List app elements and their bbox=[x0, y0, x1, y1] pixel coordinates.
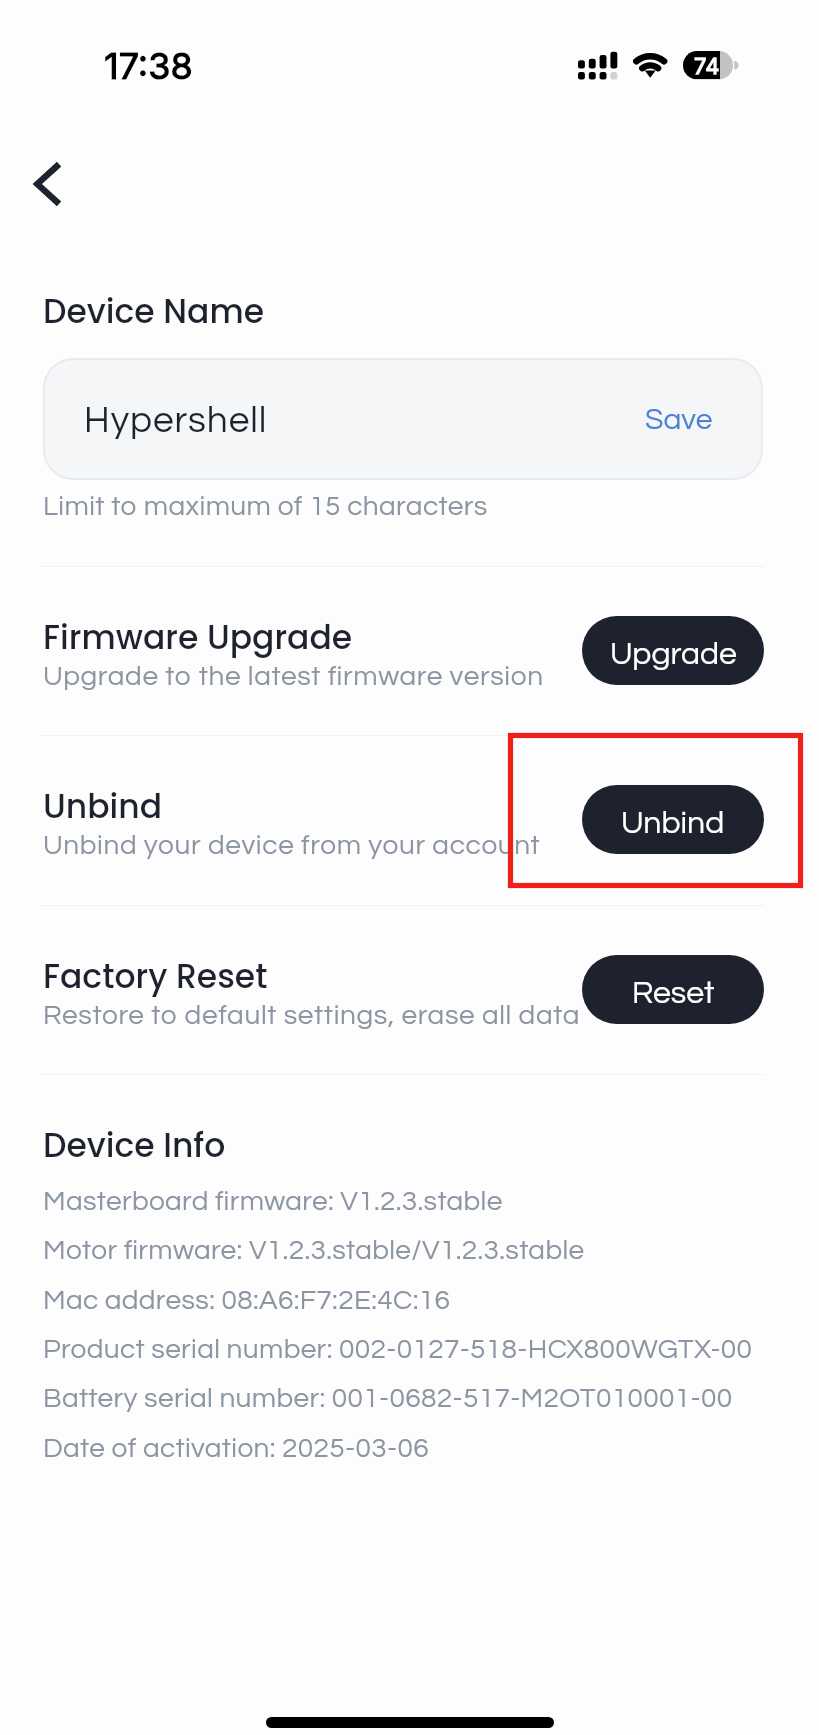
button[interactable]: Hypershell bbox=[43, 358, 763, 480]
staticText: Unbind bbox=[43, 783, 163, 829]
staticText: Product serial number: 002-0127-518-HCX8… bbox=[43, 1335, 753, 1364]
button[interactable]: Save bbox=[635, 394, 723, 445]
staticText: Battery serial number: 001-0682-517-M2OT… bbox=[43, 1384, 733, 1413]
staticText: Upgrade bbox=[610, 638, 737, 671]
staticText: Device Name bbox=[43, 288, 265, 334]
button[interactable]: Unbind bbox=[582, 785, 764, 854]
staticText: 74 bbox=[694, 53, 720, 80]
staticText: Save bbox=[645, 404, 713, 435]
staticText: Date of activation: 2025-03-06 bbox=[43, 1434, 429, 1463]
staticText: Motor firmware: V1.2.3.stable/V1.2.3.sta… bbox=[43, 1236, 585, 1265]
staticText: Reset bbox=[632, 977, 715, 1010]
button[interactable]: Back bbox=[18, 155, 76, 213]
staticText: Masterboard firmware: V1.2.3.stable bbox=[43, 1187, 503, 1216]
staticText: Upgrade to the latest firmware version bbox=[43, 662, 544, 691]
button[interactable]: Reset bbox=[582, 955, 764, 1024]
staticText: Mac address: 08:A6:F7:2E:4C:16 bbox=[43, 1286, 451, 1315]
staticText: Limit to maximum of 15 characters bbox=[43, 492, 488, 521]
button[interactable]: Upgrade bbox=[582, 616, 764, 685]
staticText: Restore to default settings, erase all d… bbox=[43, 1001, 581, 1030]
staticText: Hypershell bbox=[84, 402, 268, 440]
staticText: Unbind bbox=[621, 807, 725, 840]
staticText: Firmware Upgrade bbox=[43, 614, 353, 660]
staticText: Device Info bbox=[43, 1122, 226, 1168]
staticText: Factory Reset bbox=[43, 953, 268, 999]
staticText: 17:38 bbox=[104, 44, 193, 88]
staticText: Unbind your device from your account bbox=[43, 831, 541, 860]
